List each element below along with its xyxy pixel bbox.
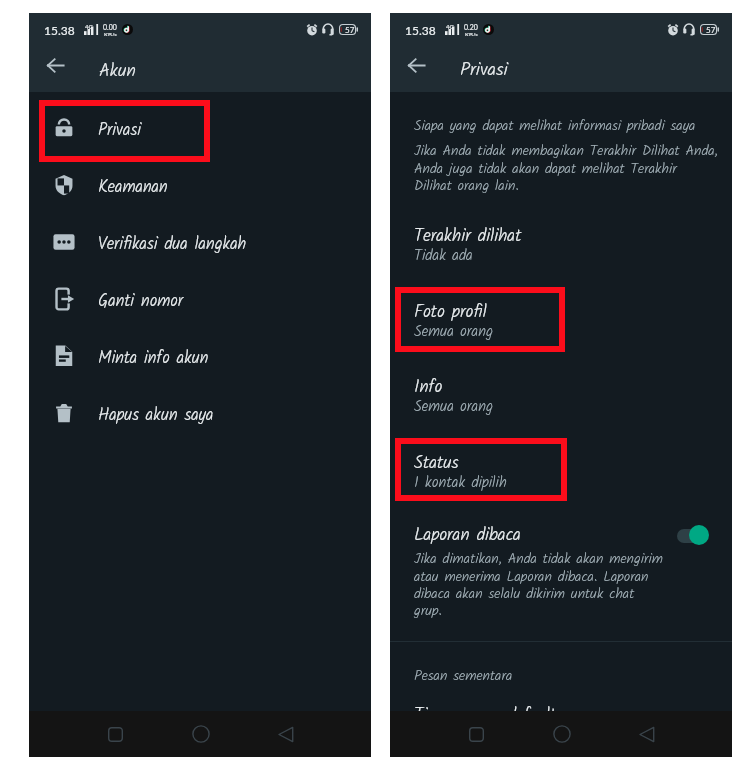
staticText: Laporan dibaca xyxy=(414,521,521,549)
staticText: Info xyxy=(414,373,443,401)
staticText: 0.00 xyxy=(103,23,117,31)
button[interactable]: Recents xyxy=(101,720,129,748)
staticText: Tidak ada xyxy=(414,244,473,268)
staticText: 4G xyxy=(446,23,454,30)
staticText: 1 kontak dipilih xyxy=(414,471,507,495)
staticText: Ganti nomor xyxy=(98,288,184,315)
button[interactable]: Back xyxy=(633,720,661,748)
staticText: Jika Anda tidak membagikan Terakhir Dili… xyxy=(414,140,724,197)
staticText: Status xyxy=(414,449,459,477)
staticText: 57 xyxy=(706,25,716,35)
staticText: Privasi xyxy=(460,55,508,84)
button[interactable]: Back xyxy=(399,48,433,82)
button[interactable]: Home xyxy=(548,720,576,748)
button[interactable]: Privasi xyxy=(29,102,371,159)
staticText: Semua orang xyxy=(414,320,494,344)
staticText: Semua orang xyxy=(414,395,494,419)
button[interactable]: Verifikasi dua langkah xyxy=(29,216,371,273)
button[interactable]: Recents xyxy=(462,720,490,748)
staticText: Hapus akun saya xyxy=(98,402,214,429)
staticText: Pesan sementara xyxy=(414,665,513,688)
staticText: Jika dimatikan, Anda tidak akan mengirim… xyxy=(414,548,663,622)
staticText: Siapa yang dapat melihat informasi priba… xyxy=(414,115,696,138)
staticText: 15.38 xyxy=(405,23,436,37)
button[interactable]: Keamanan xyxy=(29,159,371,216)
staticText: KB/s xyxy=(104,31,117,36)
staticText: 15.38 xyxy=(44,23,75,37)
staticText: Verifikasi dua langkah xyxy=(98,231,247,258)
staticText: Foto profil xyxy=(414,298,487,326)
staticText: Akun xyxy=(99,57,136,86)
button[interactable]: Hapus akun saya xyxy=(29,387,371,444)
staticText: KB/s xyxy=(465,31,478,36)
staticText: 0.20 xyxy=(464,23,478,31)
staticText: Privasi xyxy=(98,117,142,144)
staticText: 4G xyxy=(85,23,93,30)
staticText: Minta info akun xyxy=(98,345,209,372)
staticText: Keamanan xyxy=(98,174,168,201)
button[interactable]: Ganti nomor xyxy=(29,273,371,330)
button[interactable]: Back xyxy=(38,48,72,82)
button[interactable]: Minta info akun xyxy=(29,330,371,387)
button[interactable]: Home xyxy=(187,720,215,748)
button[interactable]: Foto profil xyxy=(414,298,654,350)
button[interactable]: Laporan dibaca xyxy=(414,521,672,623)
staticText: 57 xyxy=(345,25,355,35)
button[interactable]: Info xyxy=(414,373,654,425)
button[interactable]: Status xyxy=(414,449,654,501)
button[interactable]: Back xyxy=(272,720,300,748)
staticText: Terakhir dilihat xyxy=(414,222,522,250)
staticText: Timer pesan default xyxy=(414,701,556,729)
button[interactable] xyxy=(677,524,709,546)
button[interactable]: Terakhir dilihat xyxy=(414,222,654,274)
